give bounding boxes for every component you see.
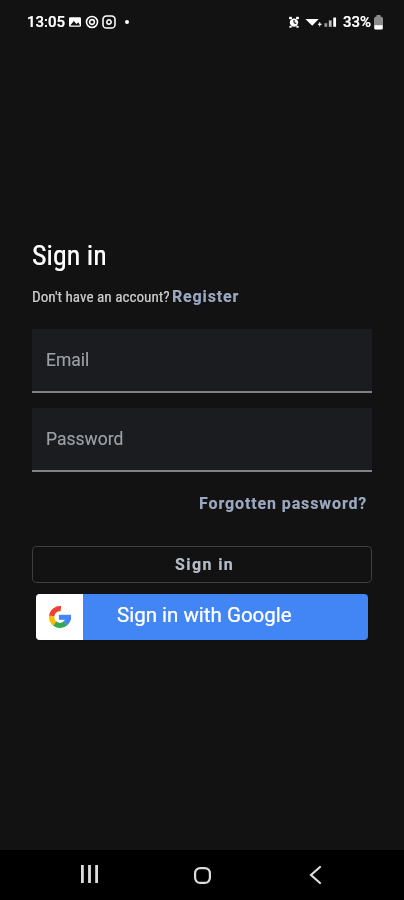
button[interactable]: Recent apps — [65, 851, 113, 899]
button[interactable]: Home — [178, 851, 226, 899]
button[interactable]: Register — [172, 287, 240, 306]
staticText: Password — [46, 429, 124, 450]
staticText: Sign in with Google — [117, 603, 292, 627]
button[interactable]: Password — [32, 408, 372, 472]
staticText: 13:05 — [27, 13, 66, 31]
staticText: Register — [172, 287, 240, 306]
staticText: Sign in — [32, 239, 107, 272]
button[interactable]: Sign in — [32, 546, 372, 583]
staticText: Don't have an account? — [32, 288, 174, 306]
button[interactable]: Email — [32, 329, 372, 393]
button[interactable]: Back — [291, 851, 339, 899]
staticText: Forgotten password? — [199, 494, 368, 513]
staticText: Email — [46, 350, 90, 371]
staticText: Sign in — [175, 555, 235, 574]
button[interactable]: Forgotten password? — [199, 494, 372, 513]
button[interactable]: Sign in with Google — [36, 594, 368, 640]
staticText: 33% — [343, 13, 372, 31]
